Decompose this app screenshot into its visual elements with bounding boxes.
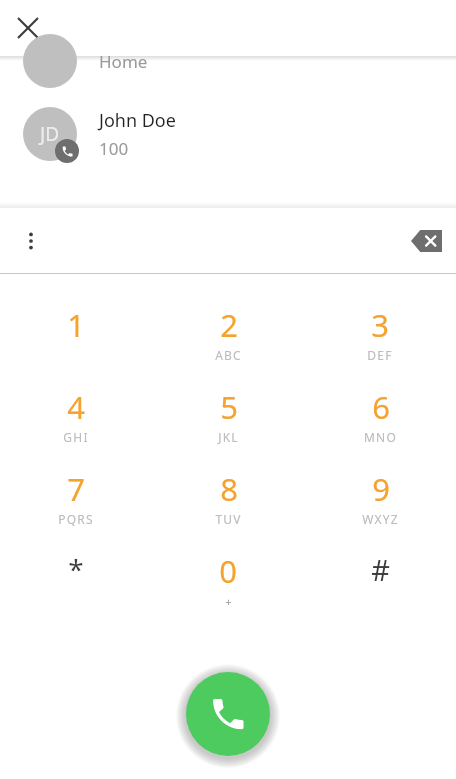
staticText: # bbox=[371, 550, 390, 589]
button[interactable]: 4 bbox=[0, 382, 152, 464]
button[interactable]: 8 bbox=[152, 464, 304, 546]
staticText: 7 bbox=[67, 468, 85, 510]
button[interactable]: 1 bbox=[0, 300, 152, 382]
button[interactable]: # bbox=[304, 546, 456, 628]
staticText: PQRS bbox=[58, 511, 94, 527]
staticText: John Doe bbox=[99, 108, 176, 133]
staticText: * bbox=[68, 550, 84, 588]
button[interactable]: 2 bbox=[152, 300, 304, 382]
button[interactable]: Home bbox=[0, 19, 456, 103]
staticText: 6 bbox=[372, 386, 390, 428]
staticText: JKL bbox=[218, 429, 239, 445]
button[interactable]: * bbox=[0, 546, 152, 628]
staticText: 100 bbox=[99, 137, 129, 160]
staticText: + bbox=[225, 594, 232, 609]
staticText: GHI bbox=[63, 429, 89, 445]
staticText: MNO bbox=[364, 429, 397, 445]
staticText: ABC bbox=[215, 347, 242, 363]
staticText: DEF bbox=[367, 347, 393, 363]
button[interactable]: Backspace bbox=[398, 213, 454, 269]
button[interactable]: 9 bbox=[304, 464, 456, 546]
staticText: 8 bbox=[220, 468, 238, 510]
button[interactable]: JD bbox=[0, 103, 456, 165]
button[interactable]: 5 bbox=[152, 382, 304, 464]
button[interactable]: 7 bbox=[0, 464, 152, 546]
staticText: Home bbox=[99, 50, 148, 73]
staticText: 2 bbox=[220, 304, 238, 346]
button[interactable]: Close bbox=[0, 0, 56, 56]
button[interactable]: 3 bbox=[304, 300, 456, 382]
staticText: 3 bbox=[371, 304, 389, 346]
button[interactable]: More options bbox=[3, 213, 59, 269]
staticText: 9 bbox=[372, 468, 390, 510]
staticText: 1 bbox=[67, 304, 85, 346]
staticText: 0 bbox=[219, 550, 237, 592]
button[interactable]: 0 bbox=[152, 546, 304, 628]
button[interactable]: 6 bbox=[304, 382, 456, 464]
staticText: WXYZ bbox=[362, 511, 399, 527]
staticText: 5 bbox=[220, 386, 238, 428]
staticText: JD bbox=[40, 121, 60, 147]
staticText: 4 bbox=[67, 386, 85, 428]
staticText: TUV bbox=[215, 511, 242, 527]
button[interactable]: Call bbox=[180, 666, 276, 762]
